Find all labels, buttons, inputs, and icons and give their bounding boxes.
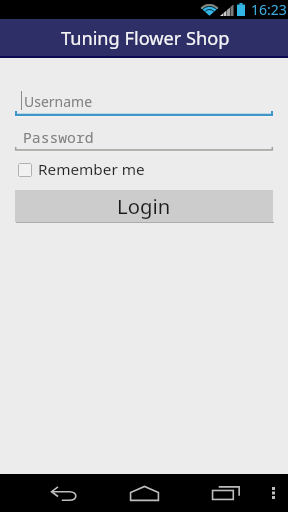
button[interactable]: Remember me	[18, 160, 145, 180]
staticText: 16:23	[251, 0, 287, 19]
staticText: Tuning Flower Shop	[61, 26, 230, 51]
button[interactable]: Back	[36, 474, 92, 512]
staticText: Remember me	[38, 159, 145, 179]
staticText: Username	[24, 92, 93, 111]
button[interactable]: Login	[15, 190, 273, 222]
staticText: Password	[23, 127, 94, 147]
staticText: Login	[117, 192, 171, 220]
button[interactable]: Password	[15, 127, 273, 151]
button[interactable]: Recent apps	[198, 474, 254, 512]
button[interactable]: More options	[258, 474, 288, 512]
button[interactable]: Home	[116, 474, 172, 512]
button[interactable]: Username	[15, 88, 273, 116]
